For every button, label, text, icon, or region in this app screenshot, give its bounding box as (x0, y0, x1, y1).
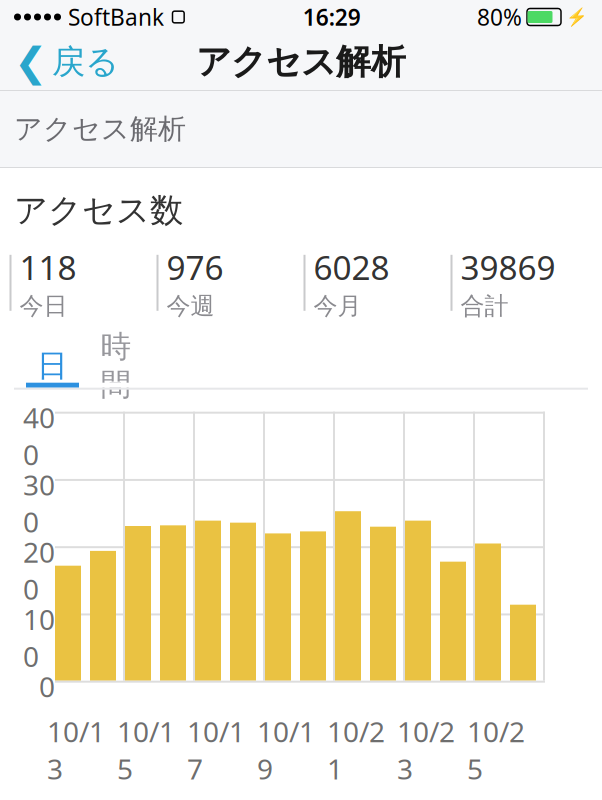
staticText: 10/15 (117, 713, 175, 787)
staticText: 時間 (100, 328, 131, 403)
staticText: 118 (19, 245, 76, 289)
staticText: 10/13 (47, 713, 105, 787)
staticText: 100 (23, 600, 55, 675)
staticText: 300 (23, 466, 55, 540)
staticText: 合計 (460, 291, 508, 321)
staticText: 10/23 (397, 713, 455, 787)
staticText: SoftBank (68, 2, 164, 32)
staticText: 400 (23, 399, 55, 473)
button[interactable]: ❮ (0, 34, 133, 90)
staticText: 日 (37, 347, 68, 385)
staticText: 戻る (52, 41, 119, 82)
staticText: 16:29 (303, 2, 361, 32)
staticText: ❮ (14, 39, 48, 85)
staticText: 10/19 (257, 713, 315, 787)
staticText: アクセス解析 (14, 112, 186, 146)
staticText: 39869 (460, 245, 555, 289)
button[interactable]: 時間 (91, 349, 141, 388)
staticText: アクセス解析 (196, 41, 406, 83)
staticText: 今週 (166, 291, 214, 321)
staticText: 10/25 (467, 713, 525, 787)
staticText: 10/17 (187, 713, 245, 787)
staticText: ⚡ (566, 7, 588, 27)
staticText: アクセス数 (14, 190, 183, 231)
staticText: 今月 (313, 291, 361, 321)
button[interactable]: 日 (26, 349, 79, 388)
staticText: 0 (39, 668, 55, 705)
staticText: 6028 (313, 245, 389, 289)
staticText: 976 (166, 245, 223, 289)
staticText: 200 (23, 533, 55, 608)
staticText: 今日 (19, 291, 67, 321)
staticText: 10/21 (327, 713, 385, 787)
staticText: 80% (477, 2, 522, 32)
